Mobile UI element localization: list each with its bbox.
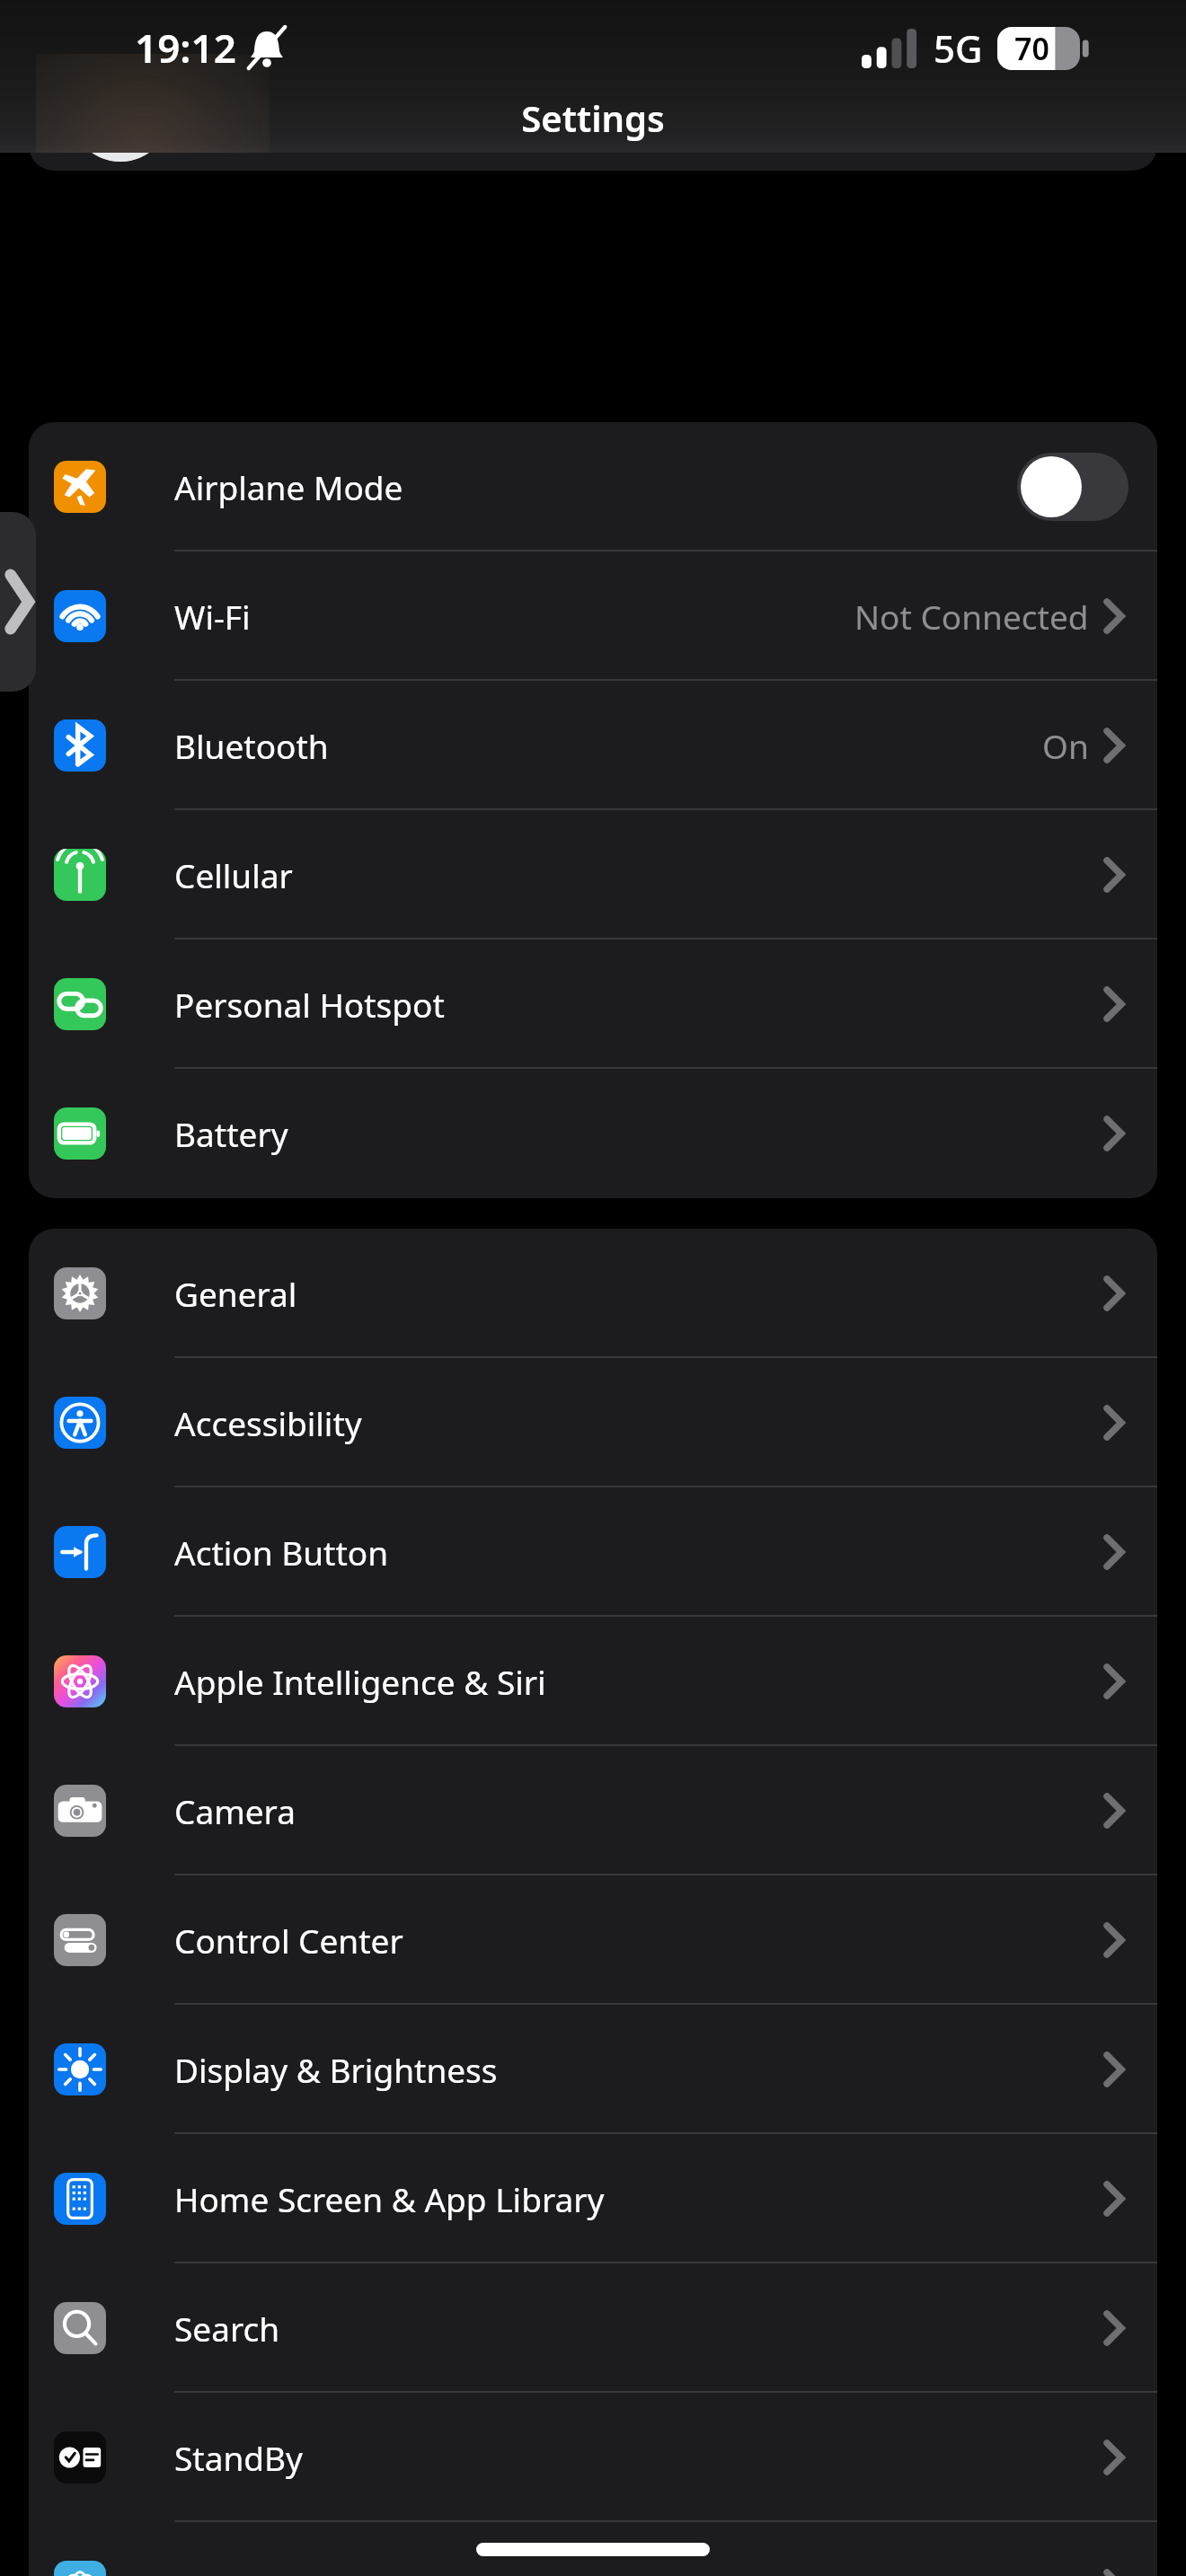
staticText: Display & Brightness xyxy=(174,2047,498,2092)
button[interactable]: Control Center xyxy=(29,1875,1157,2005)
button[interactable]: Cellular xyxy=(29,810,1157,940)
button[interactable]: General xyxy=(29,1229,1157,1358)
staticText: Cellular xyxy=(174,852,293,897)
staticText: Control Center xyxy=(174,1918,403,1963)
button[interactable]: Search xyxy=(29,2263,1157,2393)
button[interactable]: Action Button xyxy=(29,1487,1157,1617)
staticText: Accessibility xyxy=(174,1400,362,1445)
staticText: Apple Intelligence & Siri xyxy=(174,1659,546,1704)
button[interactable] xyxy=(29,0,1157,171)
button[interactable]: Bluetooth xyxy=(29,681,1157,810)
staticText: Settings xyxy=(0,93,1186,142)
button[interactable]: Wi-Fi xyxy=(29,551,1157,681)
button[interactable]: StandBy xyxy=(29,2393,1157,2522)
button[interactable]: Battery xyxy=(29,1069,1157,1198)
button[interactable]: Apple Intelligence & Siri xyxy=(29,1617,1157,1746)
staticText: Bluetooth xyxy=(174,723,329,768)
button[interactable]: Display & Brightness xyxy=(29,2005,1157,2134)
staticText: Wi-Fi xyxy=(174,594,251,639)
staticText: Camera xyxy=(174,1788,296,1833)
button[interactable]: Camera xyxy=(29,1746,1157,1875)
staticText: Search xyxy=(174,2306,280,2351)
button[interactable]: Airplane Mode xyxy=(29,422,1157,551)
staticText: Action Button xyxy=(174,1530,389,1575)
button[interactable]: Personal Hotspot xyxy=(29,940,1157,1069)
staticText: On xyxy=(1042,723,1089,768)
staticText: 5G xyxy=(934,22,983,74)
button[interactable]: Wallpaper xyxy=(29,2522,1157,2576)
staticText: Not Connected xyxy=(854,594,1089,639)
button[interactable]: Home Screen & App Library xyxy=(29,2134,1157,2263)
staticText: StandBy xyxy=(174,2435,303,2480)
staticText: Airplane Mode xyxy=(174,464,403,509)
button[interactable]: Airplane Mode off xyxy=(1017,453,1128,521)
staticText: Battery xyxy=(174,1111,288,1156)
staticText: Home Screen & App Library xyxy=(174,2176,605,2221)
staticText: 70 xyxy=(1014,28,1049,69)
button[interactable]: Accessibility xyxy=(29,1358,1157,1487)
staticText: General xyxy=(174,1271,297,1316)
staticText: Personal Hotspot xyxy=(174,982,445,1027)
button[interactable]: Open sidebar xyxy=(0,512,36,692)
staticText: 19:12 xyxy=(135,21,236,75)
